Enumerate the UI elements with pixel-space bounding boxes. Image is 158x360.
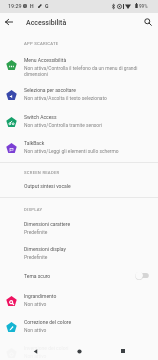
staticText: H <box>30 3 34 9</box>
button[interactable] <box>0 215 158 241</box>
staticText: 99% <box>139 4 148 9</box>
staticText: Accessibilità <box>26 19 67 27</box>
button[interactable] <box>0 339 158 360</box>
button[interactable]: Search <box>141 15 155 29</box>
button[interactable] <box>0 313 158 339</box>
staticText: Output sintesi vocale <box>24 183 71 189</box>
staticText: TalkBack <box>24 140 45 146</box>
staticText: Non attivo <box>24 353 47 359</box>
staticText: APP SCARICATE <box>24 41 59 46</box>
button[interactable] <box>0 267 158 287</box>
button[interactable]: Back <box>26 342 44 360</box>
button[interactable]: Tema scuro <box>134 270 151 281</box>
button[interactable] <box>0 51 158 81</box>
staticText: SCREEN READER <box>24 170 60 175</box>
staticText: Correzione del colore <box>24 319 72 325</box>
staticText: Non attivo <box>24 301 47 307</box>
staticText: Non attivo <box>24 327 47 333</box>
button[interactable]: Back <box>2 15 16 29</box>
staticText: Dimensioni display <box>24 246 66 252</box>
staticText: Predefinite <box>24 254 48 260</box>
staticText: Non attivo/Controlla tramite sensori <box>24 122 102 128</box>
button[interactable]: Home <box>70 342 88 360</box>
staticText: Inversione dei colori <box>24 345 69 351</box>
staticText: Dimensioni carattere <box>24 221 71 227</box>
staticText: G <box>45 3 49 9</box>
button[interactable] <box>0 107 158 134</box>
staticText: Ingrandimento <box>24 293 57 299</box>
staticText: 19:29 <box>8 3 22 9</box>
button[interactable]: Recent apps <box>114 342 132 360</box>
staticText: Tema scuro <box>24 273 51 279</box>
button[interactable] <box>0 287 158 313</box>
button[interactable] <box>0 134 158 161</box>
staticText: Non attiva/Controlla il telefono da un m… <box>24 65 154 77</box>
staticText: Predefinite <box>24 229 48 235</box>
staticText: Menu Accessibilità <box>24 57 67 63</box>
staticText: Switch Access <box>24 114 57 120</box>
button[interactable] <box>0 81 158 107</box>
staticText: Non attiva/Ascolta il testo selezionato <box>24 95 107 101</box>
staticText: Seleziona per ascoltare <box>24 87 76 93</box>
button[interactable] <box>0 241 158 267</box>
staticText: DISPLAY <box>24 207 43 212</box>
button[interactable] <box>0 178 158 197</box>
staticText: Non attivo/Leggi gli elementi sullo sche… <box>24 148 119 154</box>
